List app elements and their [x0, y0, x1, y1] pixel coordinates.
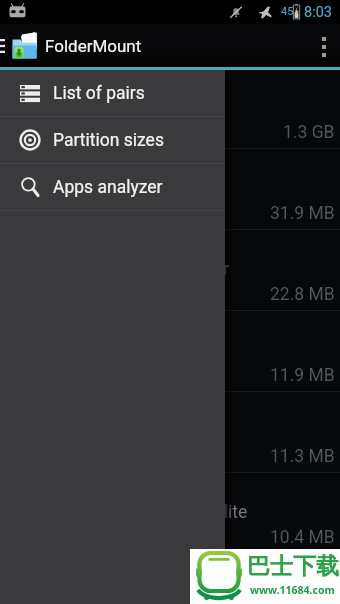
staticText: FolderMount	[45, 36, 142, 56]
button[interactable]: Apps analyzer	[0, 164, 225, 210]
button[interactable]: Google Play	[0, 68, 340, 149]
staticText: 22.8 MB	[270, 284, 335, 305]
staticText: Media Monitor	[116, 259, 230, 280]
staticText: Apps analyzer	[53, 177, 163, 198]
staticText: List of pairs	[53, 83, 145, 104]
button[interactable]: Media Monitor	[0, 230, 340, 311]
staticText: 11.9 MB	[270, 365, 335, 386]
staticText: 10.4 MB	[270, 527, 335, 548]
button[interactable]: Partition sizes	[0, 117, 225, 163]
staticText: 11.3 MB	[270, 446, 335, 467]
staticText: Facebook	[144, 178, 220, 199]
staticText: www.11684.com	[250, 583, 335, 597]
staticText: Google Play	[123, 97, 216, 118]
button[interactable]: AppLock Elite	[0, 473, 340, 554]
staticText: Partition sizes	[53, 130, 164, 151]
staticText: 8:03	[304, 4, 332, 21]
staticText: 1.3 GB	[283, 122, 335, 143]
staticText: AppLock Elite	[141, 502, 248, 523]
staticText: 45	[281, 5, 294, 18]
button[interactable]: Facebook	[0, 149, 340, 230]
button[interactable]: List of pairs	[0, 70, 225, 116]
button[interactable]: Dropbox	[0, 311, 340, 392]
button[interactable]: Open navigation drawer	[0, 24, 6, 67]
staticText: 巴士下载	[247, 552, 339, 581]
button[interactable]: Evernote	[0, 392, 340, 473]
button[interactable]: More options	[308, 24, 340, 67]
staticText: 31.9 MB	[270, 203, 335, 224]
